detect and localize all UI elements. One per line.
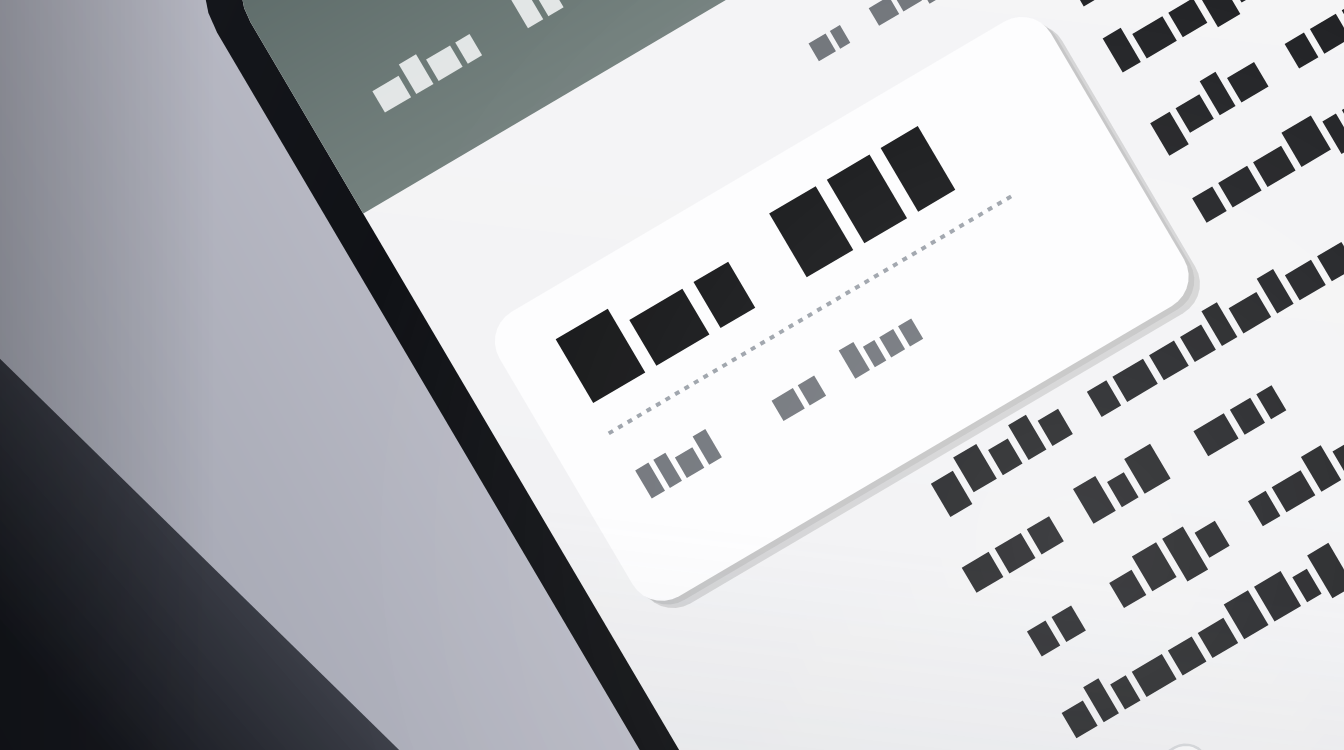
button[interactable]: Menu item two — [520, 0, 698, 75]
button[interactable]: Menu item three — [678, 0, 834, 1]
button[interactable]: Menu item one — [377, 23, 542, 159]
button[interactable]: Action chip — [1064, 737, 1230, 750]
button[interactable]: Featured card — [482, 4, 1201, 613]
